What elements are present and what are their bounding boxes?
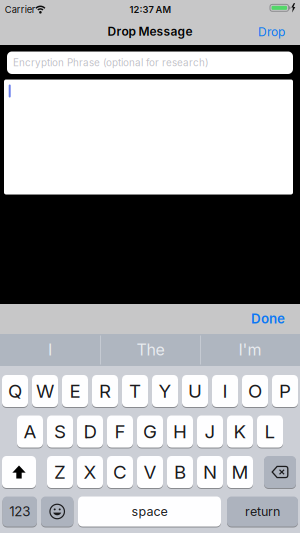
staticText: C: [113, 461, 127, 483]
staticText: Done: [251, 311, 285, 326]
button[interactable]: C: [107, 455, 133, 488]
button[interactable]: I'm: [201, 334, 299, 366]
staticText: P: [279, 380, 291, 402]
button[interactable]: H: [167, 415, 193, 448]
staticText: H: [173, 420, 187, 442]
button[interactable]: R: [92, 374, 118, 407]
button[interactable]: U: [182, 374, 208, 407]
staticText: space: [131, 504, 167, 519]
staticText: B: [174, 461, 186, 483]
button[interactable]: E: [62, 374, 88, 407]
button[interactable]: Emoji: [41, 496, 73, 527]
staticText: U: [188, 380, 202, 402]
button[interactable]: B: [167, 455, 193, 488]
button[interactable]: Done: [215, 311, 285, 326]
staticText: Drop Message: [107, 24, 192, 39]
staticText: S: [54, 420, 66, 442]
button[interactable]: J: [197, 415, 223, 448]
button[interactable]: N: [197, 455, 223, 488]
staticText: X: [83, 461, 96, 483]
staticText: 12:37 AM: [129, 4, 171, 15]
button[interactable]: L: [257, 415, 283, 448]
staticText: N: [203, 461, 217, 483]
button[interactable]: P: [272, 374, 298, 407]
button[interactable]: return: [227, 496, 298, 527]
staticText: Y: [158, 380, 171, 402]
staticText: M: [231, 461, 248, 483]
staticText: O: [248, 380, 262, 402]
button[interactable]: I: [1, 334, 99, 366]
staticText: W: [36, 380, 54, 402]
staticText: I: [222, 380, 227, 402]
staticText: F: [114, 420, 125, 442]
staticText: A: [23, 420, 36, 442]
button[interactable]: V: [137, 455, 163, 488]
button[interactable]: Drop: [225, 25, 285, 39]
button[interactable]: Q: [2, 374, 28, 407]
staticText: L: [264, 420, 275, 442]
staticText: K: [233, 420, 246, 442]
button[interactable]: Y: [152, 374, 178, 407]
staticText: D: [83, 420, 96, 442]
staticText: Carrier: [5, 4, 36, 15]
staticText: J: [204, 420, 215, 442]
staticText: return: [245, 504, 280, 519]
staticText: The: [136, 340, 164, 359]
staticText: I'm: [238, 340, 261, 359]
staticText: Q: [8, 380, 22, 402]
staticText: R: [99, 380, 111, 402]
button[interactable]: Encryption Phrase (optional for research…: [7, 51, 293, 74]
staticText: Z: [54, 461, 66, 483]
button[interactable]: W: [32, 374, 58, 407]
staticText: I: [48, 340, 52, 359]
button[interactable]: K: [227, 415, 253, 448]
button[interactable]: G: [137, 415, 163, 448]
button[interactable]: space: [78, 496, 221, 527]
button[interactable]: A: [17, 415, 43, 448]
button[interactable]: O: [242, 374, 268, 407]
staticText: V: [143, 461, 156, 483]
button[interactable]: M: [227, 455, 253, 488]
button[interactable]: Numbers: [2, 496, 37, 527]
button[interactable]: S: [47, 415, 73, 448]
button[interactable]: Shift: [2, 455, 36, 488]
button[interactable]: Message: [4, 79, 293, 194]
button[interactable]: I: [212, 374, 238, 407]
button[interactable]: Delete: [264, 455, 296, 488]
button[interactable]: T: [122, 374, 148, 407]
staticText: Drop: [258, 25, 285, 39]
button[interactable]: The: [101, 334, 199, 366]
staticText: E: [69, 380, 80, 402]
button[interactable]: F: [107, 415, 133, 448]
staticText: Encryption Phrase (optional for research…: [13, 57, 209, 69]
button[interactable]: D: [77, 415, 103, 448]
button[interactable]: X: [77, 455, 103, 488]
button[interactable]: Z: [47, 455, 73, 488]
staticText: 123: [9, 504, 30, 519]
staticText: G: [143, 420, 157, 442]
staticText: T: [129, 380, 141, 402]
